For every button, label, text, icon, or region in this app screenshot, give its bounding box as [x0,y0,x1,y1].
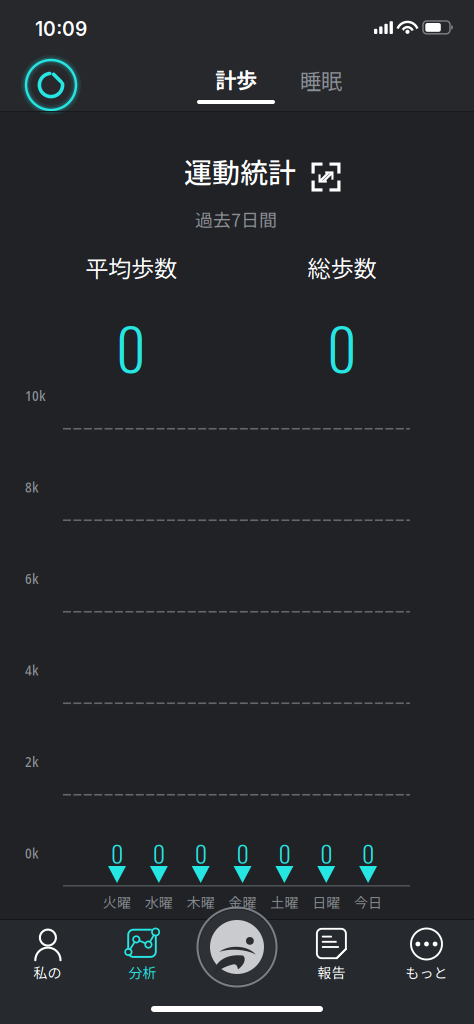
staticText: 0 [111,835,123,871]
staticText: 0 [327,304,357,389]
button[interactable]: Start workout [196,906,278,988]
staticText: 計歩 [215,64,257,94]
staticText: 報告 [317,962,345,982]
staticText: 0 [278,835,290,871]
staticText: 総歩数 [307,250,376,284]
button[interactable]: 分析 [95,928,190,994]
staticText: 8k [25,477,38,497]
button[interactable]: Expand [308,159,344,195]
staticText: 0 [116,304,146,389]
staticText: 木曜 [187,892,215,912]
button[interactable]: Activity rings [21,56,81,114]
staticText: 0 [195,835,207,871]
staticText: 0 [362,835,374,871]
staticText: 10:09 [35,17,87,41]
staticText: 0k [25,843,38,863]
staticText: 過去7日間 [195,206,277,232]
staticText: 土曜 [270,892,298,912]
staticText: もっと [405,962,447,982]
staticText: 0 [320,835,332,871]
staticText: 日曜 [312,892,340,912]
button[interactable]: 睡眠 [281,67,361,93]
staticText: 睡眠 [300,65,342,95]
staticText: 6k [25,569,38,588]
staticText: 私の [33,962,61,982]
staticText: 0 [237,835,249,871]
button[interactable]: もっと [379,928,474,994]
button[interactable]: 報告 [284,928,379,994]
staticText: 分析 [128,962,156,982]
staticText: 今日 [354,892,382,912]
staticText: 2k [25,752,38,771]
staticText: 運動統計 [184,151,296,191]
staticText: 水曜 [145,892,173,912]
staticText: 10k [25,386,45,405]
button[interactable]: 計歩 [186,66,286,124]
button[interactable]: 私の [0,928,95,994]
staticText: 火曜 [103,892,131,912]
staticText: 4k [25,660,38,680]
staticText: 金曜 [229,892,257,912]
staticText: 平均歩数 [85,250,177,284]
staticText: 0 [153,835,165,871]
